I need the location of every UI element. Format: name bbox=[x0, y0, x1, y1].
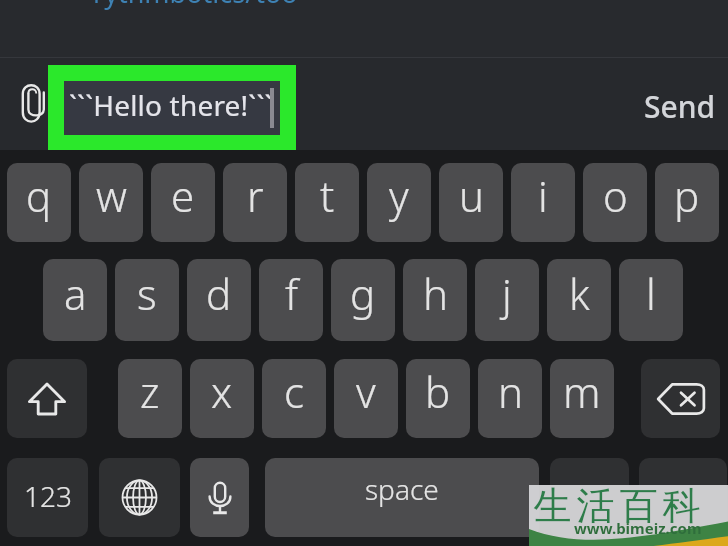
button[interactable]: h bbox=[403, 259, 467, 341]
staticText: t bbox=[320, 167, 335, 224]
button[interactable]: Return bbox=[639, 458, 727, 537]
staticText: f bbox=[285, 265, 298, 322]
button[interactable]: v bbox=[334, 359, 398, 438]
staticText: rythmbotics/too bbox=[93, 0, 298, 11]
staticText: j bbox=[502, 265, 512, 322]
button[interactable]: Backspace bbox=[641, 359, 720, 438]
button[interactable]: c bbox=[262, 359, 326, 438]
button[interactable]: i bbox=[511, 163, 575, 242]
button[interactable]: x bbox=[190, 359, 254, 438]
staticText: x bbox=[211, 363, 233, 420]
staticText: q bbox=[26, 167, 52, 224]
staticText: k bbox=[569, 265, 590, 322]
button[interactable]: d bbox=[187, 259, 251, 341]
button[interactable]: Send bbox=[634, 76, 726, 133]
button[interactable]: Emoji bbox=[550, 458, 629, 537]
staticText: i bbox=[538, 167, 548, 224]
staticText: c bbox=[284, 363, 304, 420]
button[interactable]: z bbox=[118, 359, 182, 438]
staticText: z bbox=[140, 363, 160, 420]
button[interactable]: 123 bbox=[7, 458, 88, 537]
staticText: h bbox=[423, 265, 448, 322]
staticText: a bbox=[64, 265, 87, 322]
button[interactable]: y bbox=[367, 163, 431, 242]
staticText: 生活百科 bbox=[531, 482, 703, 530]
button[interactable]: w bbox=[79, 163, 143, 242]
button[interactable]: k bbox=[547, 259, 611, 341]
staticText: l bbox=[646, 265, 656, 322]
button[interactable]: m bbox=[550, 359, 614, 438]
staticText: ```Hello there!``` bbox=[69, 86, 273, 124]
button[interactable]: f bbox=[259, 259, 323, 341]
staticText: space bbox=[365, 470, 439, 508]
staticText: p bbox=[674, 167, 700, 224]
staticText: 123 bbox=[24, 477, 72, 515]
button[interactable]: l bbox=[619, 259, 683, 341]
button[interactable]: e bbox=[151, 163, 215, 242]
button[interactable]: Attach file bbox=[10, 80, 58, 128]
button[interactable]: s bbox=[115, 259, 179, 341]
staticText: n bbox=[498, 363, 523, 420]
button[interactable]: o bbox=[583, 163, 647, 242]
button[interactable]: j bbox=[475, 259, 539, 341]
staticText: s bbox=[137, 265, 157, 322]
button[interactable]: t bbox=[295, 163, 359, 242]
staticText: y bbox=[389, 167, 409, 224]
staticText: g bbox=[350, 265, 376, 322]
staticText: u bbox=[459, 167, 484, 224]
staticText: m bbox=[563, 363, 601, 420]
staticText: r bbox=[247, 167, 264, 224]
button[interactable]: n bbox=[478, 359, 542, 438]
button[interactable]: b bbox=[406, 359, 470, 438]
button[interactable]: space bbox=[265, 458, 539, 537]
staticText: b bbox=[425, 363, 451, 420]
staticText: d bbox=[206, 265, 232, 322]
staticText: o bbox=[603, 167, 628, 224]
button[interactable]: a bbox=[43, 259, 107, 341]
button[interactable]: Voice input bbox=[190, 458, 249, 537]
button[interactable]: p bbox=[655, 163, 719, 242]
button[interactable]: q bbox=[7, 163, 71, 242]
button[interactable]: ```Hello there!``` bbox=[64, 81, 280, 135]
staticText: www.bimeiz.com bbox=[574, 518, 702, 538]
staticText: w bbox=[96, 167, 127, 224]
staticText: v bbox=[356, 363, 376, 420]
button[interactable]: Change language bbox=[99, 458, 180, 537]
button[interactable]: u bbox=[439, 163, 503, 242]
button[interactable]: Shift bbox=[7, 359, 87, 438]
button[interactable]: r bbox=[223, 163, 287, 242]
staticText: e bbox=[171, 167, 195, 224]
staticText: Send bbox=[644, 86, 716, 127]
button[interactable]: g bbox=[331, 259, 395, 341]
